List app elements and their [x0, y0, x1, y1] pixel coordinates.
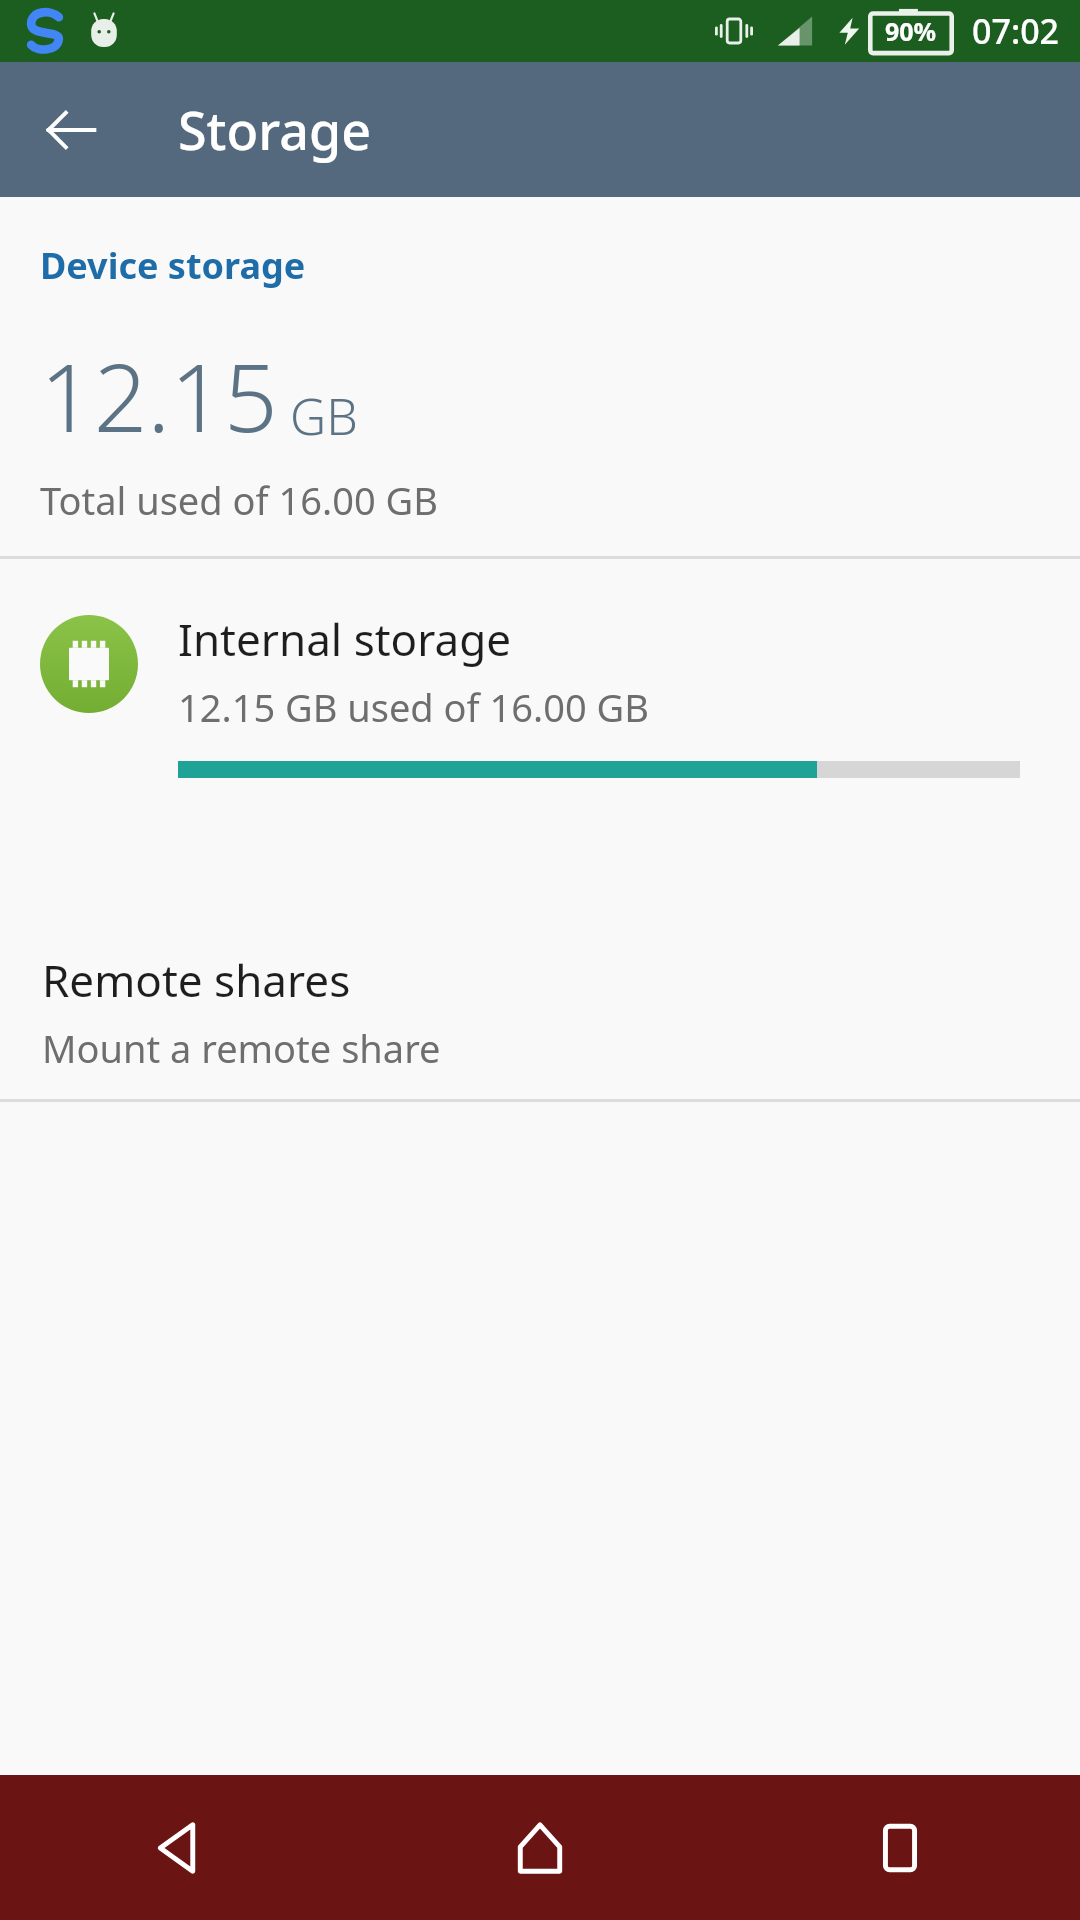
staticText: 90%	[885, 14, 937, 48]
button[interactable]: Remote shares	[0, 914, 1080, 1099]
staticText: 12.15 GB used of 16.00 GB	[178, 681, 649, 733]
button[interactable]: Home	[360, 1775, 720, 1920]
staticText: Mount a remote share	[42, 1022, 441, 1074]
staticText: 12.15	[40, 332, 278, 460]
button[interactable]: Internal storage	[0, 559, 1080, 914]
staticText: Internal storage	[178, 609, 512, 669]
staticText: Storage	[178, 94, 372, 165]
staticText: 07:02	[972, 8, 1060, 54]
staticText: Total used of 16.00 GB	[40, 474, 438, 526]
button[interactable]: Back	[0, 1775, 360, 1920]
button[interactable]: Recent apps	[720, 1775, 1080, 1920]
staticText: GB	[290, 382, 358, 450]
staticText: Device storage	[40, 241, 306, 290]
staticText: Remote shares	[42, 950, 351, 1010]
button[interactable]: Back	[28, 87, 114, 173]
